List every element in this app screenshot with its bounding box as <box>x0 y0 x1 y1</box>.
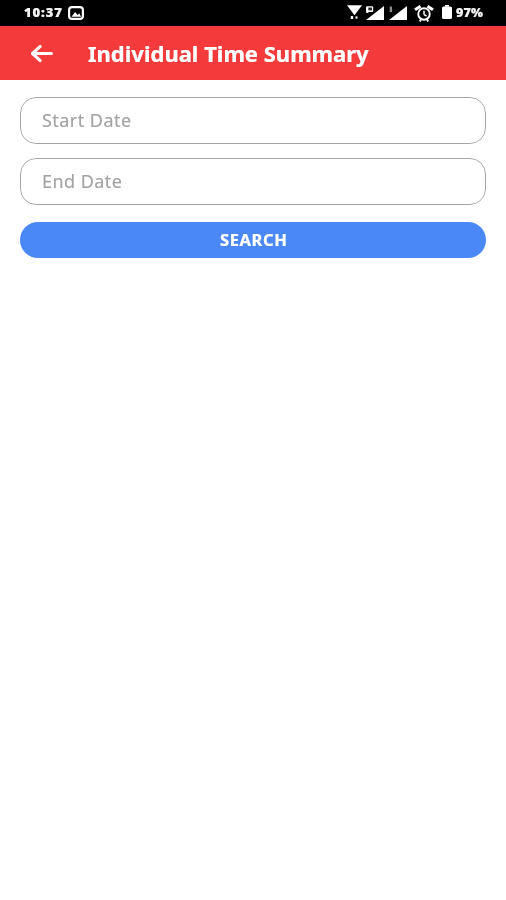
staticText: Start Date <box>42 108 132 133</box>
staticText: SEARCH <box>220 228 288 250</box>
staticText: 97% <box>456 4 484 21</box>
staticText: End Date <box>42 169 123 194</box>
button[interactable]: End Date <box>20 158 486 205</box>
button[interactable]: Back <box>18 30 64 76</box>
button[interactable]: Start Date <box>20 97 486 144</box>
button[interactable]: SEARCH <box>20 222 486 258</box>
staticText: 10:37 <box>24 3 63 21</box>
staticText: Individual Time Summary <box>88 38 369 68</box>
